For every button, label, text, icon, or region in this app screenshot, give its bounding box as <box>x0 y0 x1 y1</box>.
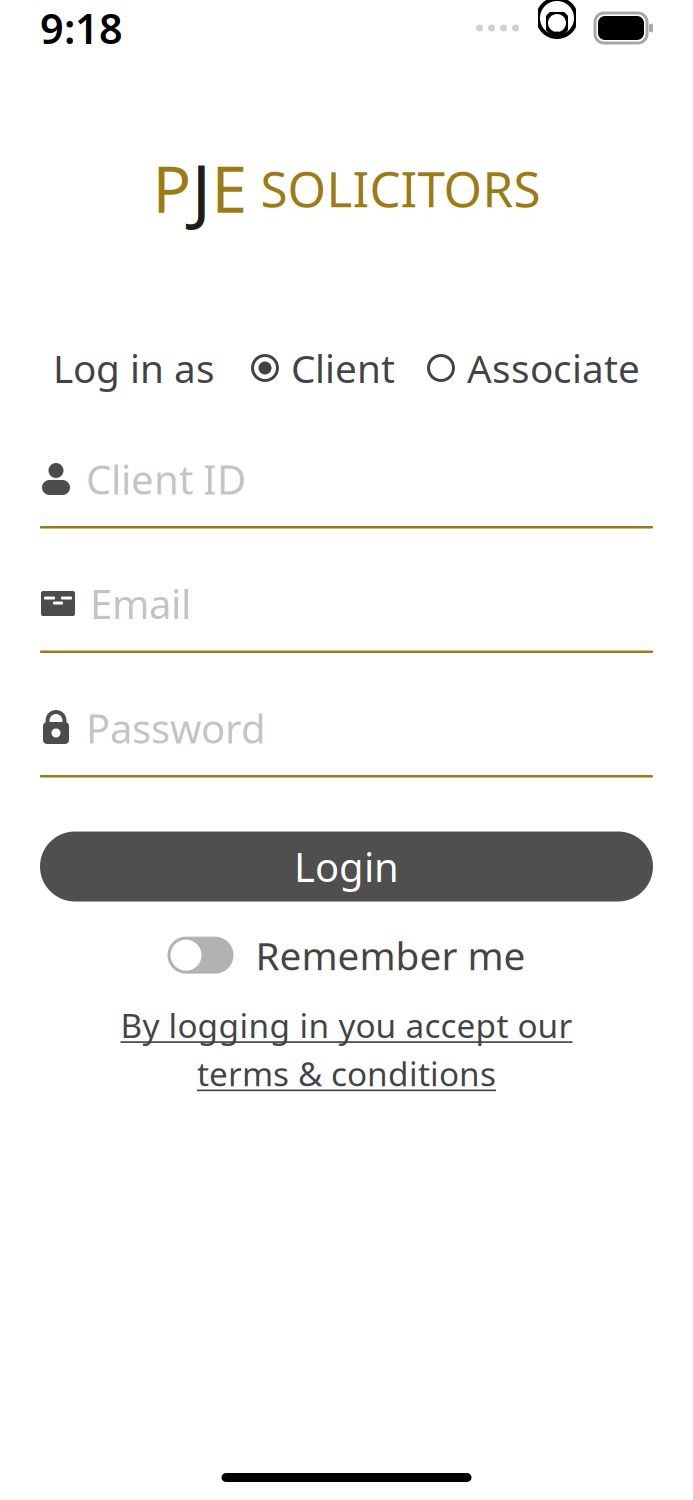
button[interactable]: Login <box>40 831 653 901</box>
staticText: Password <box>86 701 266 754</box>
staticText: Remember me <box>255 929 525 981</box>
staticText: Log in as <box>53 342 215 394</box>
button[interactable]: Password <box>40 701 653 777</box>
staticText: P <box>152 145 191 230</box>
staticText: Login <box>294 840 399 893</box>
button[interactable]: Remember me <box>167 929 525 981</box>
staticText: E <box>211 145 247 230</box>
staticText: Client ID <box>86 452 246 505</box>
staticText: By logging in you accept our <box>120 1003 572 1047</box>
button[interactable]: Client <box>251 336 395 400</box>
staticText: terms & conditions <box>197 1051 496 1095</box>
staticText: Client <box>291 342 395 394</box>
button[interactable]: Client ID <box>40 452 653 528</box>
button[interactable]: Associate <box>427 336 640 400</box>
staticText: 9:18 <box>40 1 123 55</box>
staticText: Email <box>90 577 191 630</box>
button[interactable]: By logging in you accept our <box>120 1003 572 1095</box>
staticText: SOLICITORS <box>247 155 540 221</box>
staticText: J <box>191 140 211 236</box>
button[interactable]: Email <box>40 576 653 653</box>
staticText: Associate <box>467 342 640 394</box>
